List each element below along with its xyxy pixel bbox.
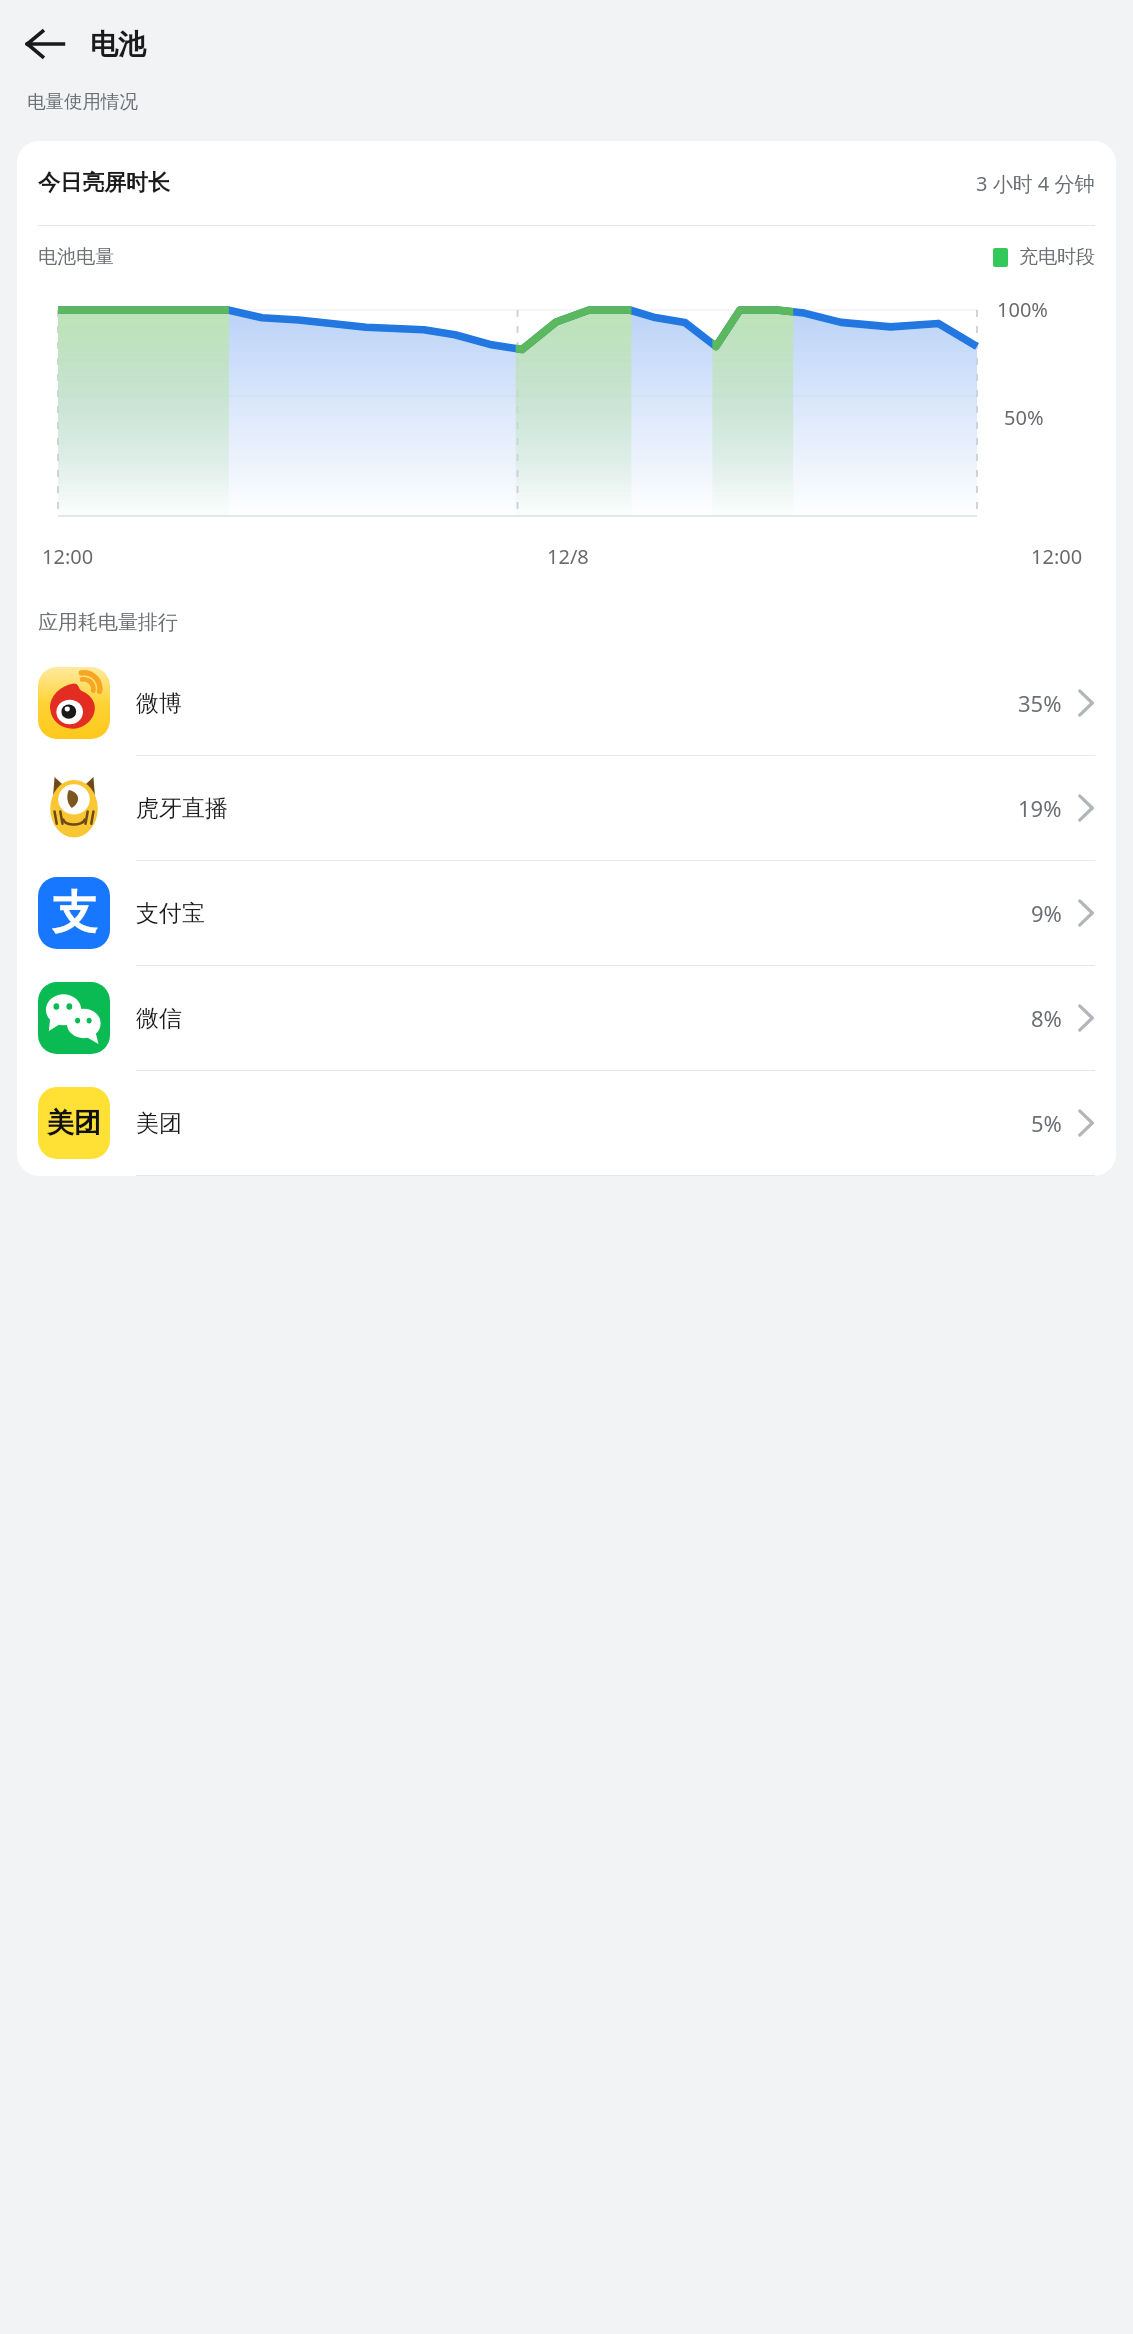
staticText: 35%	[1018, 688, 1062, 718]
button[interactable]: 微信	[17, 966, 1116, 1071]
staticText: 3 小时 4 分钟	[976, 170, 1095, 197]
staticText: 100%	[997, 296, 1048, 323]
staticText: 电池	[90, 27, 146, 62]
button[interactable]: 虎牙直播	[17, 756, 1116, 861]
button[interactable]: 美团	[17, 1071, 1116, 1176]
button[interactable]: 支	[17, 861, 1116, 966]
staticText: 19%	[1018, 793, 1062, 823]
staticText: 应用耗电量排行	[38, 610, 178, 635]
staticText: 50%	[1004, 404, 1044, 431]
staticText: 支	[52, 885, 97, 942]
staticText: 电量使用情况	[27, 90, 138, 113]
staticText: 虎牙直播	[136, 794, 228, 823]
button[interactable]: Back	[14, 13, 76, 75]
staticText: 12:00	[42, 543, 94, 570]
staticText: 12/8	[547, 543, 589, 570]
button[interactable]: 今日亮屏时长	[17, 141, 1116, 225]
staticText: 支付宝	[136, 899, 205, 928]
button[interactable]: 微博	[17, 651, 1116, 756]
staticText: 充电时段	[1019, 245, 1095, 269]
staticText: 美团	[136, 1109, 182, 1138]
staticText: 美团	[47, 1106, 101, 1140]
staticText: 微信	[136, 1004, 182, 1033]
staticText: 12:00	[1031, 543, 1083, 570]
staticText: 今日亮屏时长	[38, 169, 170, 197]
staticText: 8%	[1031, 1003, 1062, 1033]
staticText: 电池电量	[38, 245, 114, 269]
staticText: 微博	[136, 689, 182, 718]
staticText: 9%	[1031, 898, 1062, 928]
staticText: 5%	[1031, 1108, 1062, 1138]
